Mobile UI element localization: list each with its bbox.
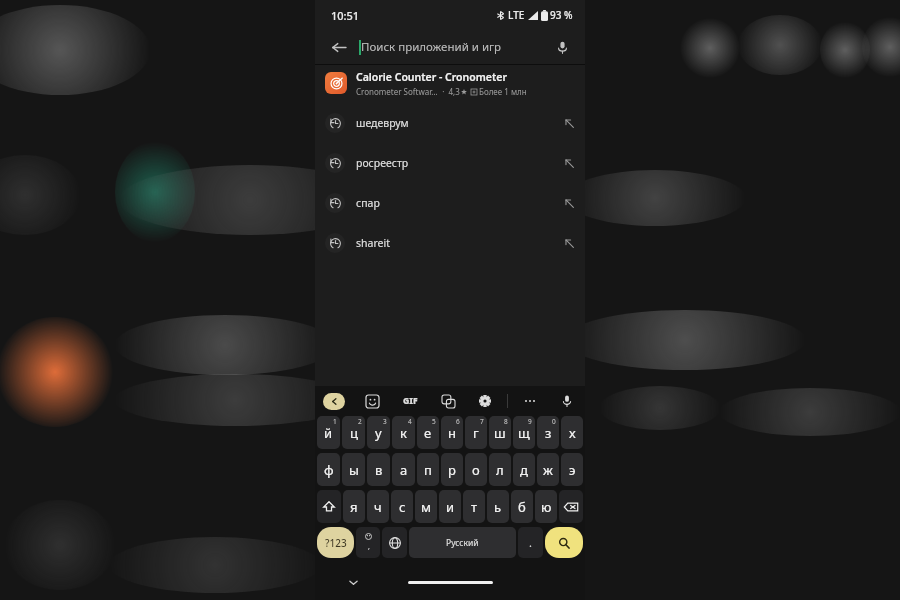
staticText: 8 [504,417,508,426]
button[interactable]: ц [342,416,365,449]
button[interactable]: ь [487,490,509,523]
staticText: ж [543,461,553,479]
button[interactable]: п [417,453,439,486]
staticText: у [375,424,382,442]
staticText: ч [374,498,382,516]
staticText: 6 [456,417,460,426]
staticText: ш [494,424,506,442]
button[interactable]: ы [342,453,365,486]
button[interactable]: Поиск [545,527,583,558]
staticText: 93 % [550,8,573,22]
staticText: shareit [356,236,390,250]
button[interactable]: э [561,453,583,486]
button[interactable]: ч [367,490,389,523]
button[interactable]: т [463,490,485,523]
button[interactable]: л [489,453,511,486]
staticText: спар [356,196,380,210]
button[interactable]: Сменить язык [382,527,407,558]
button[interactable]: у [367,416,390,449]
button[interactable]: и [439,490,461,523]
button[interactable]: к [392,416,415,449]
button[interactable]: н [441,416,463,449]
button[interactable]: ш [489,416,511,449]
button[interactable]: Голосовой поиск [547,32,577,62]
staticText: д [520,461,528,479]
button[interactable]: Скрыть клавиатуру [345,574,361,590]
button[interactable]: Голосовой ввод [557,391,577,411]
button[interactable]: Русский [409,527,516,558]
button[interactable]: г [465,416,487,449]
button[interactable]: спар [315,183,585,223]
button[interactable]: в [367,453,390,486]
staticText: щ [518,424,530,442]
button[interactable]: Стикеры [362,391,382,411]
button[interactable]: ж [537,453,559,486]
staticText: г [473,424,479,442]
staticText: 0 [552,417,556,426]
staticText: Поиск приложений и игр [361,39,502,55]
staticText: е [424,424,432,442]
button[interactable]: с [391,490,413,523]
staticText: 1 [333,417,337,426]
button[interactable]: р [441,453,463,486]
button[interactable]: Эмодзи [356,527,380,558]
button[interactable]: Перевод [438,391,458,411]
staticText: ф [324,461,334,479]
button[interactable]: . [518,527,543,558]
staticText: а [400,461,408,479]
button[interactable]: shareit [315,223,585,263]
button[interactable]: ю [535,490,557,523]
staticText: . [529,535,532,550]
staticText: о [472,461,480,479]
button[interactable]: ф [317,453,340,486]
staticText: б [518,498,526,516]
staticText: и [446,498,455,516]
staticText: н [448,424,456,442]
staticText: з [545,424,552,442]
staticText: Русский [446,537,479,549]
button[interactable]: е [417,416,439,449]
button[interactable]: з [537,416,559,449]
button[interactable]: я [343,490,365,523]
button[interactable]: шедеврум [315,103,585,143]
staticText: э [569,461,576,479]
button[interactable]: Удалить [559,490,583,523]
staticText: 2 [358,417,362,426]
staticText: 10:51 [331,8,360,23]
staticText: GIF [403,395,418,407]
button[interactable]: Ещё [520,391,540,411]
staticText: ь [494,498,502,516]
button[interactable]: б [511,490,533,523]
staticText: к [400,424,407,442]
staticText: 4 [408,417,412,426]
button[interactable]: щ [513,416,535,449]
staticText: шедеврум [356,116,409,130]
staticText: ы [349,461,359,479]
button[interactable]: д [513,453,535,486]
staticText: 5 [432,417,436,426]
staticText: я [350,498,358,516]
staticText: п [424,461,432,479]
button[interactable]: Свернуть панель [323,393,345,410]
button[interactable]: о [465,453,487,486]
staticText: 7 [480,417,484,426]
button[interactable]: Назад [323,32,353,62]
button[interactable]: Shift [317,490,341,523]
staticText: ю [541,498,552,516]
button[interactable]: Настройки [475,391,495,411]
staticText: росреестр [356,156,409,170]
staticText: Cronometer Softwar… [356,86,438,97]
button[interactable]: й [317,416,340,449]
button[interactable]: росреестр [315,143,585,183]
button[interactable]: GIF [399,390,421,412]
button[interactable]: х [561,416,583,449]
staticText: LTE [508,8,525,22]
button[interactable]: а [392,453,415,486]
button[interactable]: м [415,490,437,523]
button[interactable]: ?123 [317,527,354,558]
staticText: ?123 [325,536,347,550]
staticText: л [496,461,504,479]
staticText: м [421,498,431,516]
button[interactable]: Calorie Counter - Cronometer [315,65,585,101]
staticText: й [324,424,333,442]
